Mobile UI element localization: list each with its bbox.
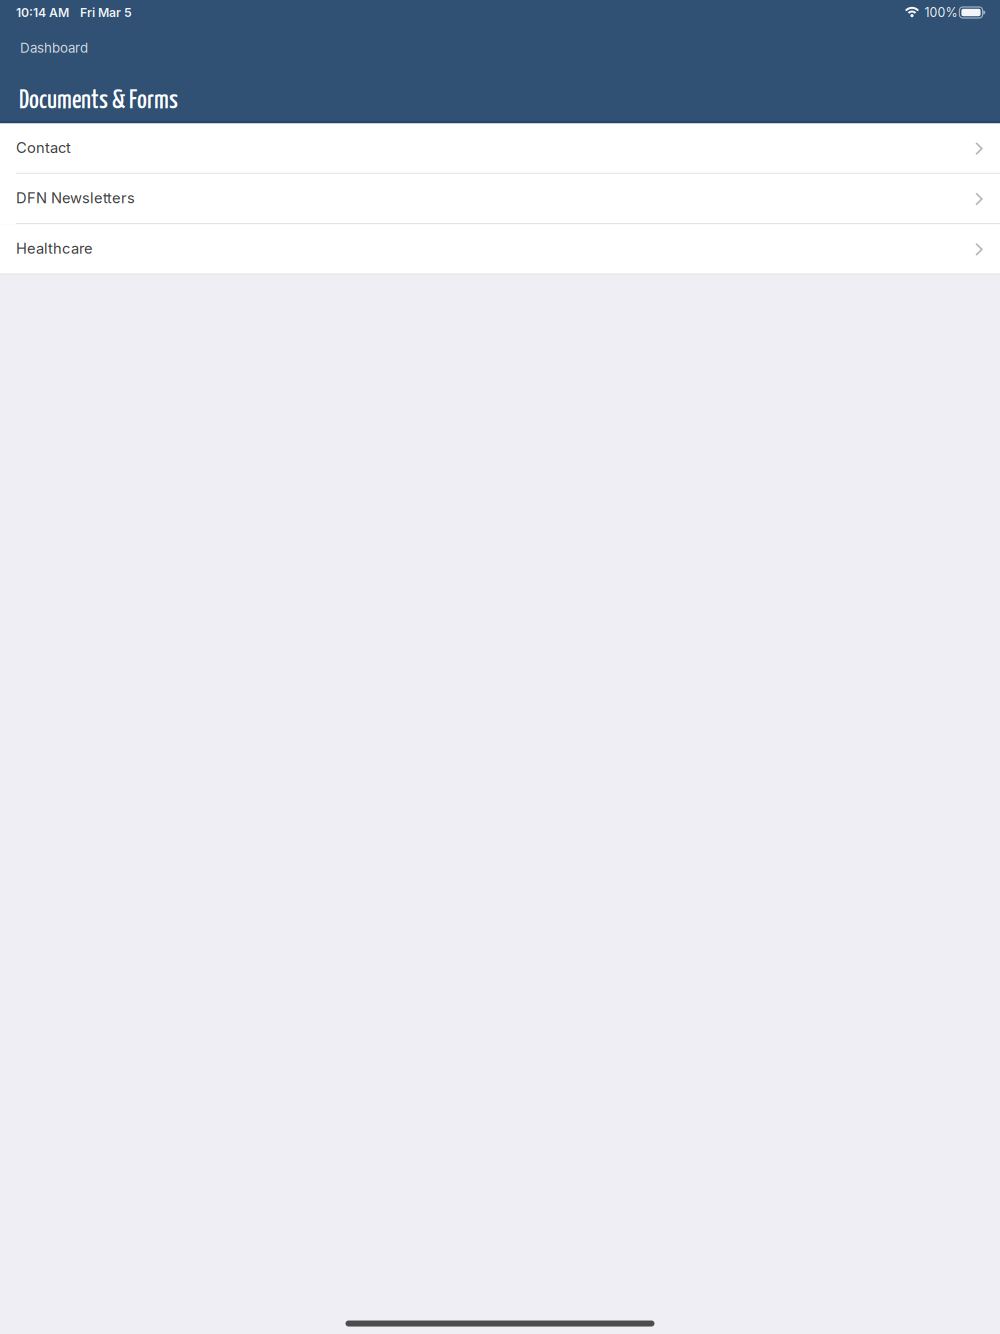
staticText: Contact (16, 139, 71, 156)
staticText: 100% (924, 5, 957, 20)
staticText: 10:14 AM (16, 5, 69, 20)
staticText: DFN Newsletters (16, 189, 135, 207)
staticText: Fri Mar 5 (80, 5, 132, 20)
button[interactable]: DFN Newsletters (0, 174, 1000, 224)
staticText: Documents & Forms (19, 88, 178, 113)
button[interactable]: Healthcare (0, 224, 1000, 275)
staticText: Dashboard (20, 40, 88, 56)
staticText: Healthcare (16, 239, 93, 257)
button[interactable]: Contact (0, 123, 1000, 174)
button[interactable]: Dashboard (0, 25, 1000, 71)
